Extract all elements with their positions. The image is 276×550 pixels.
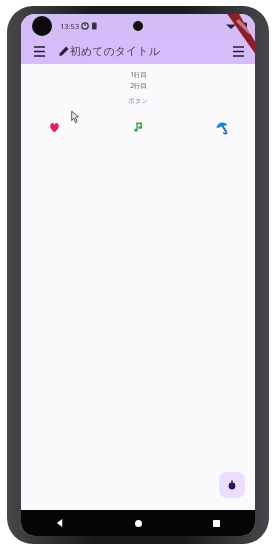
button[interactable]: Navigation menu [29,41,49,61]
staticText: ボタン [128,97,148,105]
button[interactable]: More options [228,41,248,61]
button[interactable]: Recent apps [203,510,229,536]
staticText: 1行目 [130,70,147,79]
button[interactable]: ボタン [124,96,152,106]
staticText: 2行目 [130,81,147,90]
staticText: 13:53 [60,21,80,31]
button[interactable]: Music note [127,116,149,138]
staticText: 初めてのタイトル [70,44,160,58]
button[interactable]: Home [125,510,151,536]
button[interactable]: Heart [43,116,65,138]
button[interactable]: Add [219,472,245,498]
button[interactable]: Back [47,510,73,536]
button[interactable]: Umbrella [211,116,233,138]
